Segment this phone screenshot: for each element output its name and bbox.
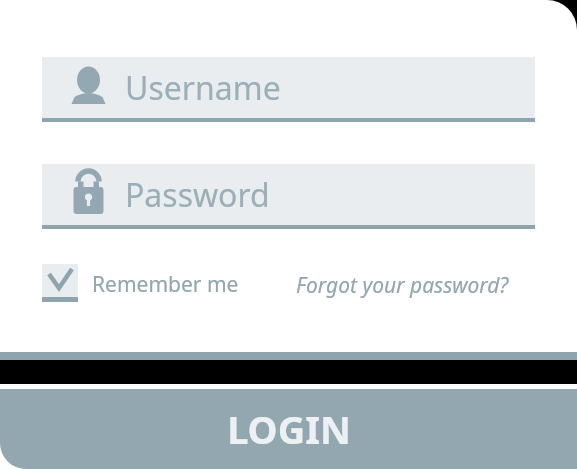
staticText: Forgot your password? [296,271,509,300]
staticText: Remember me [92,270,239,299]
staticText: Password [125,173,270,217]
staticText: LOGIN [227,403,351,455]
button[interactable]: LOGIN [0,389,577,469]
button[interactable]: Remember me checkbox [42,262,242,304]
button[interactable]: Forgot your password? [296,268,531,302]
staticText: Username [125,66,281,110]
button[interactable]: Password [42,164,535,229]
button[interactable]: Username [42,57,535,122]
other: Remember me checkbox [42,263,78,303]
